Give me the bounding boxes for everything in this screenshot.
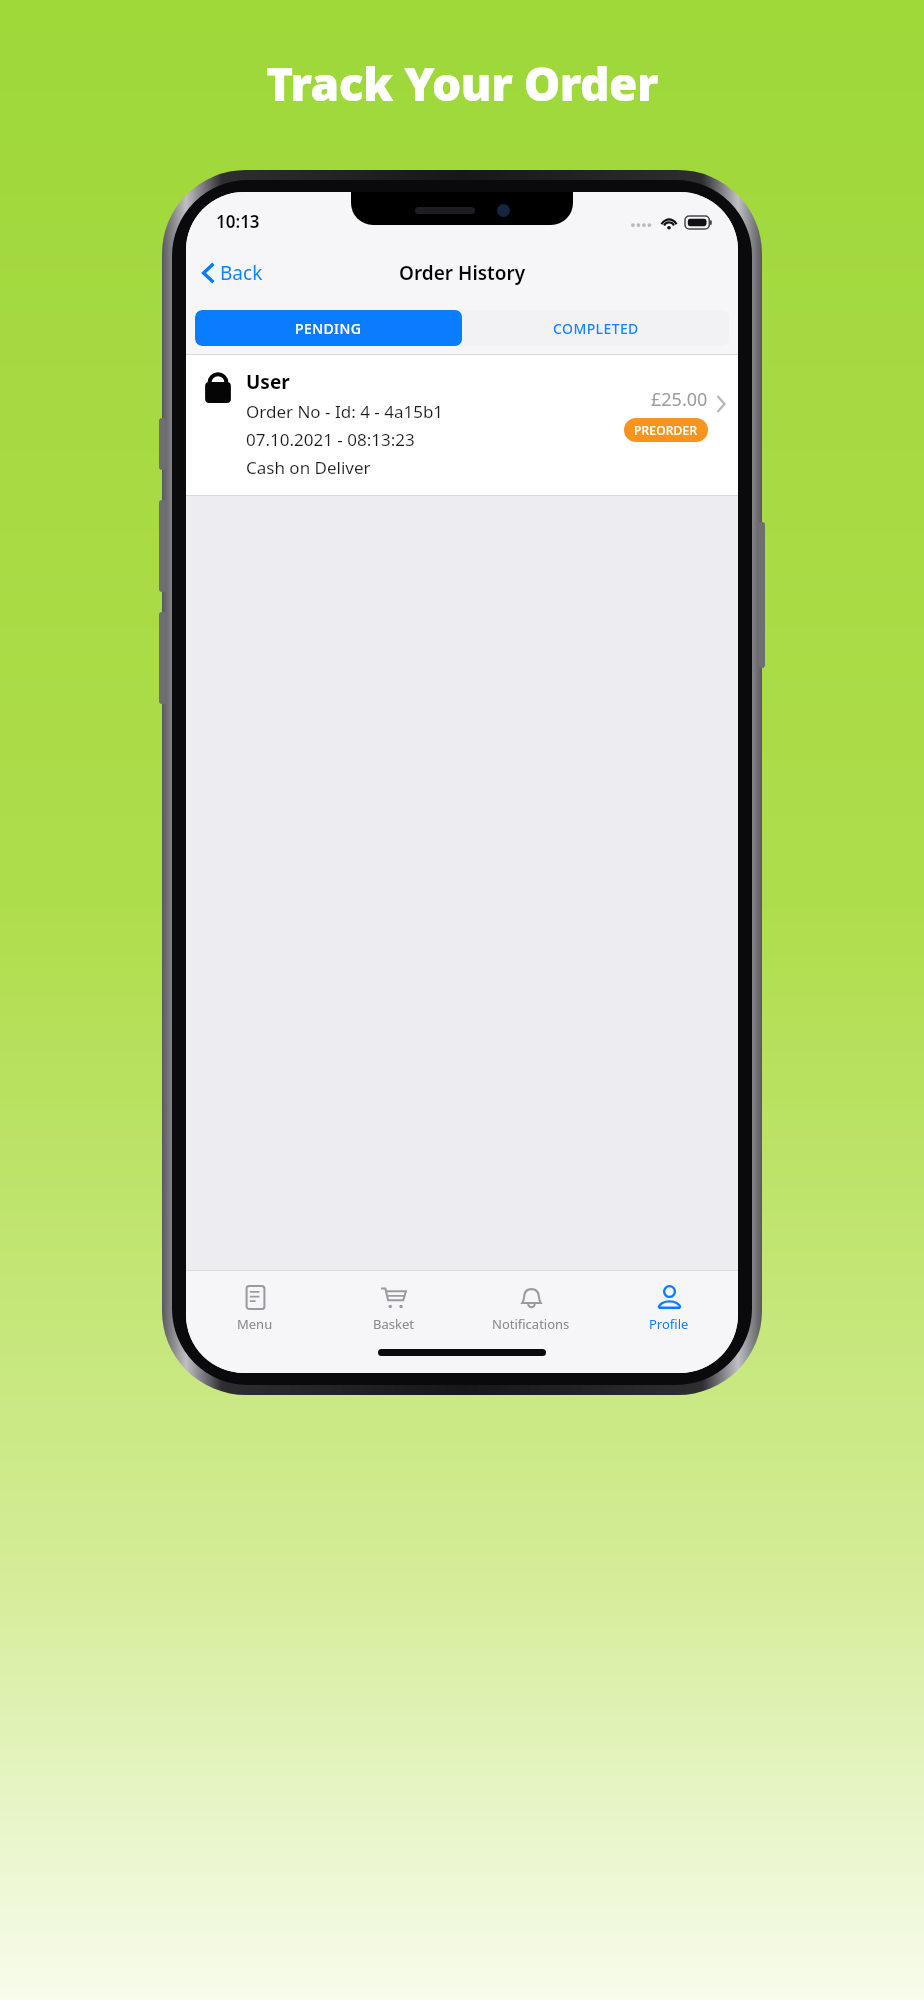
button[interactable]: Notifications: [462, 1271, 600, 1345]
staticText: 07.10.2021 - 08:13:23: [246, 428, 415, 451]
staticText: Basket: [373, 1315, 414, 1333]
staticText: Menu: [237, 1315, 273, 1333]
staticText: 10:13: [216, 210, 260, 233]
button[interactable]: Profile: [600, 1271, 738, 1345]
staticText: COMPLETED: [553, 319, 639, 338]
staticText: Back: [220, 260, 263, 286]
button[interactable]: Basket: [324, 1271, 462, 1345]
staticText: PENDING: [295, 319, 362, 338]
button[interactable]: User: [186, 355, 738, 495]
button[interactable]: COMPLETED: [462, 310, 729, 346]
staticText: Notifications: [492, 1315, 570, 1333]
staticText: PREORDER: [634, 422, 698, 438]
staticText: User: [246, 369, 290, 395]
staticText: Order History: [399, 260, 526, 286]
staticText: Cash on Deliver: [246, 456, 371, 479]
button[interactable]: Back: [186, 254, 275, 292]
staticText: Track Your Order: [266, 52, 659, 115]
staticText: Order No - Id: 4 - 4a15b1: [246, 400, 444, 423]
button[interactable]: Menu: [186, 1271, 324, 1345]
button[interactable]: PENDING: [195, 310, 462, 346]
staticText: Profile: [649, 1315, 689, 1333]
staticText: £25.00: [651, 387, 708, 412]
